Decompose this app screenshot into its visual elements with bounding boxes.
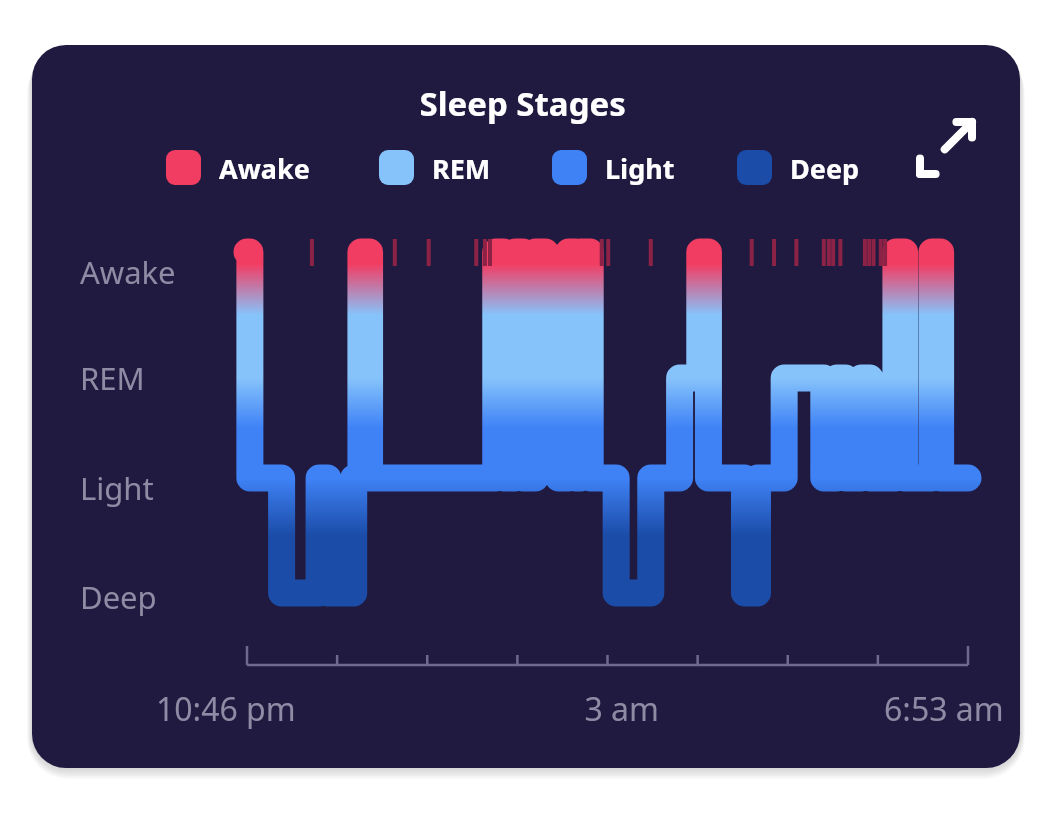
button[interactable] [32,45,1020,768]
button[interactable]: Expand chart to full screen [905,106,989,190]
